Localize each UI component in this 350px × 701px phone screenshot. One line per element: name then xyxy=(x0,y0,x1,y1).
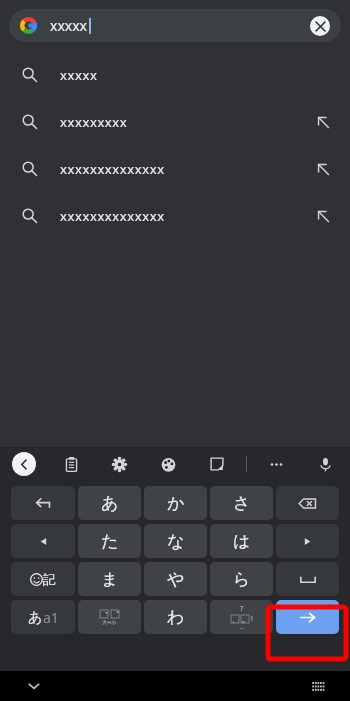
button[interactable]: わ xyxy=(144,600,207,634)
button[interactable]: xxxxxxxxxxxxxx xyxy=(0,192,350,239)
staticText: xxxxxxxxxxxxxx xyxy=(60,207,165,225)
button[interactable]: Settings xyxy=(106,451,132,477)
button[interactable]: Insert suggestion xyxy=(312,205,334,227)
staticText: は xyxy=(233,531,251,552)
button[interactable]: Clear query xyxy=(310,16,330,36)
button[interactable]: Undo xyxy=(11,486,75,520)
button[interactable]: Enter xyxy=(276,600,339,634)
button[interactable]: Insert suggestion xyxy=(312,111,334,133)
staticText: ゜ xyxy=(111,610,119,618)
button[interactable]: xxxxx xyxy=(0,51,350,98)
staticText: か xyxy=(167,493,185,514)
staticText: ま xyxy=(101,569,119,590)
button[interactable]: Switch input mode xyxy=(11,600,75,634)
button[interactable]: Emoji and symbols xyxy=(11,562,75,596)
button[interactable]: Voice input xyxy=(312,451,338,477)
button[interactable]: ま xyxy=(78,562,141,596)
staticText: xxxxxxxxx xyxy=(60,113,128,131)
staticText: あ xyxy=(28,609,43,627)
button[interactable]: Stickers xyxy=(204,451,230,477)
staticText: 大⇔小 xyxy=(102,619,117,625)
button[interactable]: ら xyxy=(210,562,273,596)
button[interactable]: た xyxy=(78,524,141,558)
staticText: xxxxx xyxy=(50,16,88,35)
staticText: な xyxy=(167,531,185,552)
staticText: ! xyxy=(251,614,253,624)
button[interactable]: さ xyxy=(210,486,273,520)
button[interactable]: Hide keyboard xyxy=(22,674,46,698)
staticText: 記 xyxy=(43,571,56,587)
button[interactable]: Space xyxy=(276,562,339,596)
button[interactable]: xxxxxxxxx xyxy=(0,98,350,145)
staticText: わ xyxy=(167,607,185,628)
staticText: xxxxxxxxxxxxxx xyxy=(60,160,165,178)
button[interactable]: は xyxy=(210,524,273,558)
staticText: さ xyxy=(233,493,251,514)
button[interactable]: Move cursor right xyxy=(276,524,339,558)
button[interactable]: や xyxy=(144,562,207,596)
button[interactable]: か xyxy=(144,486,207,520)
button[interactable]: More options xyxy=(263,451,289,477)
staticText: あ xyxy=(101,493,119,514)
staticText: xxxxx xyxy=(60,66,98,84)
button[interactable]: Switch keyboard xyxy=(306,674,330,698)
staticText: ? xyxy=(240,604,244,614)
staticText: た xyxy=(101,531,119,552)
staticText: ゛ xyxy=(100,610,108,618)
staticText: ら xyxy=(233,569,251,590)
staticText: a1 xyxy=(43,608,59,627)
button[interactable]: Move cursor left xyxy=(11,524,75,558)
button[interactable]: Back xyxy=(12,452,36,476)
button[interactable]: Backspace xyxy=(276,486,339,520)
button[interactable]: Clipboard xyxy=(58,451,84,477)
button[interactable]: Themes xyxy=(155,451,181,477)
button[interactable]: xxxxxxxxxxxxxx xyxy=(0,145,350,192)
button[interactable]: xxxxx xyxy=(9,9,341,42)
staticText: 、 xyxy=(232,615,239,623)
staticText: や xyxy=(167,569,185,590)
button[interactable]: あ xyxy=(78,486,141,520)
button[interactable]: Punctuation xyxy=(210,600,273,634)
button[interactable]: Dakuten and small kana xyxy=(78,600,141,634)
button[interactable]: な xyxy=(144,524,207,558)
staticText: … xyxy=(240,624,244,631)
button[interactable]: Insert suggestion xyxy=(312,158,334,180)
staticText: 。 xyxy=(242,615,249,623)
